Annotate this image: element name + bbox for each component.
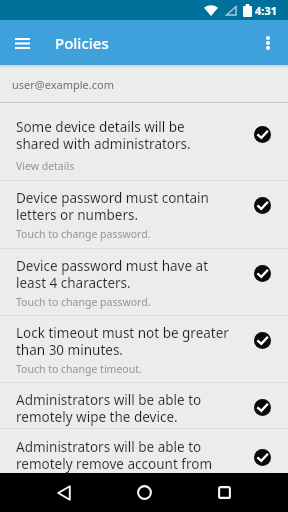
button[interactable]: Device password must contain letters or … (0, 181, 288, 249)
button[interactable] (31, 473, 97, 512)
staticText: Lock timeout must not be greater than 30… (16, 324, 229, 359)
staticText: View details (16, 159, 75, 173)
staticText: Policies (55, 33, 109, 53)
button[interactable]: Lock timeout must not be greater than 30… (0, 316, 288, 383)
button[interactable]: Administrators will be able to remotely … (0, 429, 288, 473)
staticText: Touch to change timeout. (16, 362, 142, 376)
staticText: Device password must contain letters or … (16, 189, 209, 224)
staticText: 4:31 (255, 3, 277, 18)
staticText: user@example.com (12, 77, 114, 92)
button[interactable]: Some device details will be shared with … (0, 103, 288, 181)
button[interactable]: user@example.com (0, 65, 288, 103)
staticText: Administrators will be able to remotely … (16, 438, 213, 473)
button[interactable]: Administrators will be able to remotely … (0, 383, 288, 429)
button[interactable] (191, 473, 257, 512)
button[interactable] (111, 473, 177, 512)
staticText: Touch to change password. (16, 227, 151, 241)
staticText: Administrators will be able to remotely … (16, 391, 202, 426)
button[interactable]: Device password must have at least 4 cha… (0, 249, 288, 316)
staticText: Device password must have at least 4 cha… (16, 257, 209, 292)
staticText: Some device details will be shared with … (16, 118, 191, 153)
button[interactable] (7, 28, 37, 58)
staticText: Touch to change password. (16, 295, 151, 309)
button[interactable] (256, 31, 280, 55)
